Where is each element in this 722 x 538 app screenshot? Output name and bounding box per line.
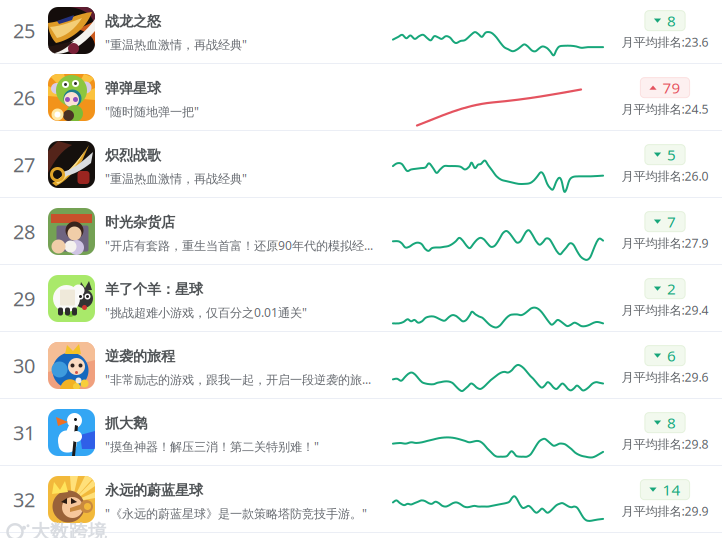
staticText: 5 — [667, 144, 676, 165]
staticText: 永远的蔚蓝星球 — [105, 481, 203, 499]
staticText: 月平均排名:24.5 — [621, 101, 708, 117]
staticText: "非常励志的游戏，跟我一起，开启一段逆袭的旅... — [105, 371, 371, 388]
staticText: 30 — [13, 352, 35, 379]
staticText: 6 — [667, 345, 676, 366]
staticText: 逆袭的旅程 — [105, 347, 175, 365]
staticText: 28 — [13, 218, 35, 245]
button[interactable]: 27 — [0, 131, 722, 198]
staticText: "重温热血激情，再战经典" — [105, 36, 247, 53]
staticText: 月平均排名:29.9 — [621, 503, 708, 519]
staticText: 27 — [13, 151, 35, 178]
button[interactable]: 25 — [0, 0, 722, 64]
staticText: 2 — [667, 278, 676, 299]
staticText: 32 — [13, 486, 35, 513]
staticText: 炽烈战歌 — [105, 146, 161, 164]
button[interactable]: 31 — [0, 399, 722, 466]
staticText: "摸鱼神器！解压三消！第二关特别难！" — [105, 438, 319, 455]
staticText: 月平均排名:29.8 — [621, 436, 708, 452]
button[interactable]: 32 — [0, 466, 722, 533]
staticText: 大数跨境 — [31, 520, 107, 538]
button[interactable]: 28 — [0, 198, 722, 265]
staticText: 月平均排名:23.6 — [621, 34, 708, 50]
staticText: 月平均排名:29.6 — [621, 369, 708, 385]
button[interactable]: 30 — [0, 332, 722, 399]
staticText: 29 — [13, 285, 35, 312]
staticText: 14 — [663, 479, 681, 500]
staticText: 31 — [13, 419, 35, 446]
staticText: 抓大鹅 — [105, 414, 147, 432]
button[interactable]: 29 — [0, 265, 722, 332]
staticText: 月平均排名:26.0 — [621, 168, 708, 184]
staticText: "随时随地弹一把" — [105, 103, 199, 120]
staticText: 月平均排名:29.4 — [621, 302, 708, 318]
staticText: 25 — [13, 17, 35, 44]
staticText: 26 — [13, 84, 35, 111]
button[interactable]: 26 — [0, 64, 722, 131]
staticText: 弹弹星球 — [105, 79, 161, 97]
staticText: "《永远的蔚蓝星球》是一款策略塔防竞技手游。" — [105, 505, 367, 522]
staticText: "挑战超难小游戏，仅百分之0.01通关" — [105, 304, 307, 321]
staticText: "开店有套路，重生当首富！还原90年代的模拟经... — [105, 237, 373, 254]
staticText: 月平均排名:27.9 — [621, 235, 708, 251]
staticText: 羊了个羊：星球 — [105, 280, 203, 298]
staticText: 8 — [667, 10, 676, 31]
staticText: 时光杂货店 — [105, 213, 175, 231]
staticText: 战龙之怒 — [105, 12, 161, 30]
staticText: 8 — [667, 412, 676, 433]
staticText: "重温热血激情，再战经典" — [105, 170, 247, 187]
staticText: 7 — [667, 211, 676, 232]
staticText: 79 — [663, 77, 681, 98]
